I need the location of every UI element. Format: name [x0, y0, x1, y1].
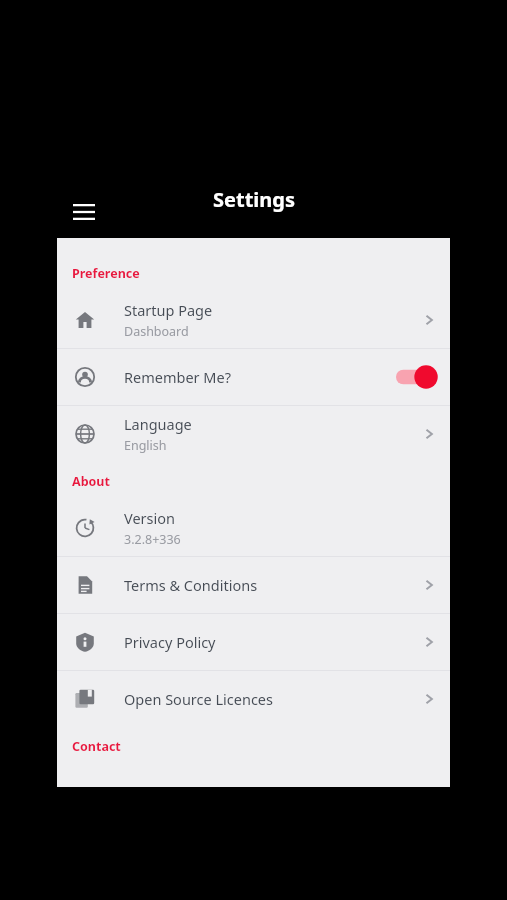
staticText: English	[124, 437, 167, 454]
staticText: 3.2.8+336	[124, 531, 181, 548]
staticText: Remember Me?	[124, 367, 231, 387]
button[interactable]: Terms & Conditions	[57, 557, 450, 613]
button[interactable]: Startup Page	[57, 292, 450, 348]
staticText: About	[72, 473, 110, 490]
staticText: Privacy Policy	[124, 632, 216, 652]
button[interactable]	[394, 364, 438, 390]
button[interactable]: Language	[57, 406, 450, 462]
button[interactable]: Version	[57, 500, 450, 556]
staticText: Version	[124, 508, 175, 528]
button[interactable]: Open Source Licences	[57, 671, 450, 727]
staticText: Startup Page	[124, 300, 213, 320]
staticText: Preference	[72, 265, 140, 282]
staticText: Dashboard	[124, 323, 189, 340]
button[interactable]: Privacy Policy	[57, 614, 450, 670]
staticText: Terms & Conditions	[124, 575, 258, 595]
button[interactable]: Remember Me?	[57, 349, 450, 405]
staticText: Settings	[213, 186, 295, 213]
staticText: Open Source Licences	[124, 689, 273, 709]
staticText: Language	[124, 414, 192, 434]
button[interactable]: Open navigation menu	[68, 196, 100, 228]
staticText: Contact	[72, 738, 121, 755]
